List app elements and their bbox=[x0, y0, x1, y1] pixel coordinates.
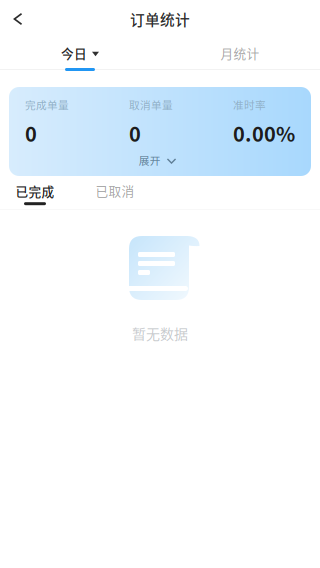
button[interactable]: 展开 bbox=[139, 150, 181, 170]
staticText: 已完成 bbox=[15, 182, 54, 200]
staticText: 0 bbox=[129, 118, 141, 147]
button[interactable]: 已完成 bbox=[0, 178, 70, 209]
staticText: 完成单量 bbox=[25, 97, 69, 112]
staticText: 已取消 bbox=[95, 181, 134, 200]
button[interactable]: 返回 bbox=[0, 2, 36, 36]
staticText: 展开 bbox=[139, 152, 161, 168]
staticText: 0 bbox=[25, 118, 37, 147]
button[interactable]: 今日 bbox=[0, 38, 160, 71]
staticText: 0.00% bbox=[233, 118, 295, 147]
staticText: 暂无数据 bbox=[132, 323, 188, 343]
staticText: 今日 bbox=[61, 44, 87, 62]
staticText: 订单统计 bbox=[130, 8, 190, 30]
button[interactable]: 月统计 bbox=[160, 38, 320, 71]
button[interactable]: 已取消 bbox=[70, 178, 160, 209]
staticText: 取消单量 bbox=[129, 97, 173, 112]
staticText: 月统计 bbox=[220, 44, 259, 62]
staticText: 准时率 bbox=[233, 97, 266, 112]
